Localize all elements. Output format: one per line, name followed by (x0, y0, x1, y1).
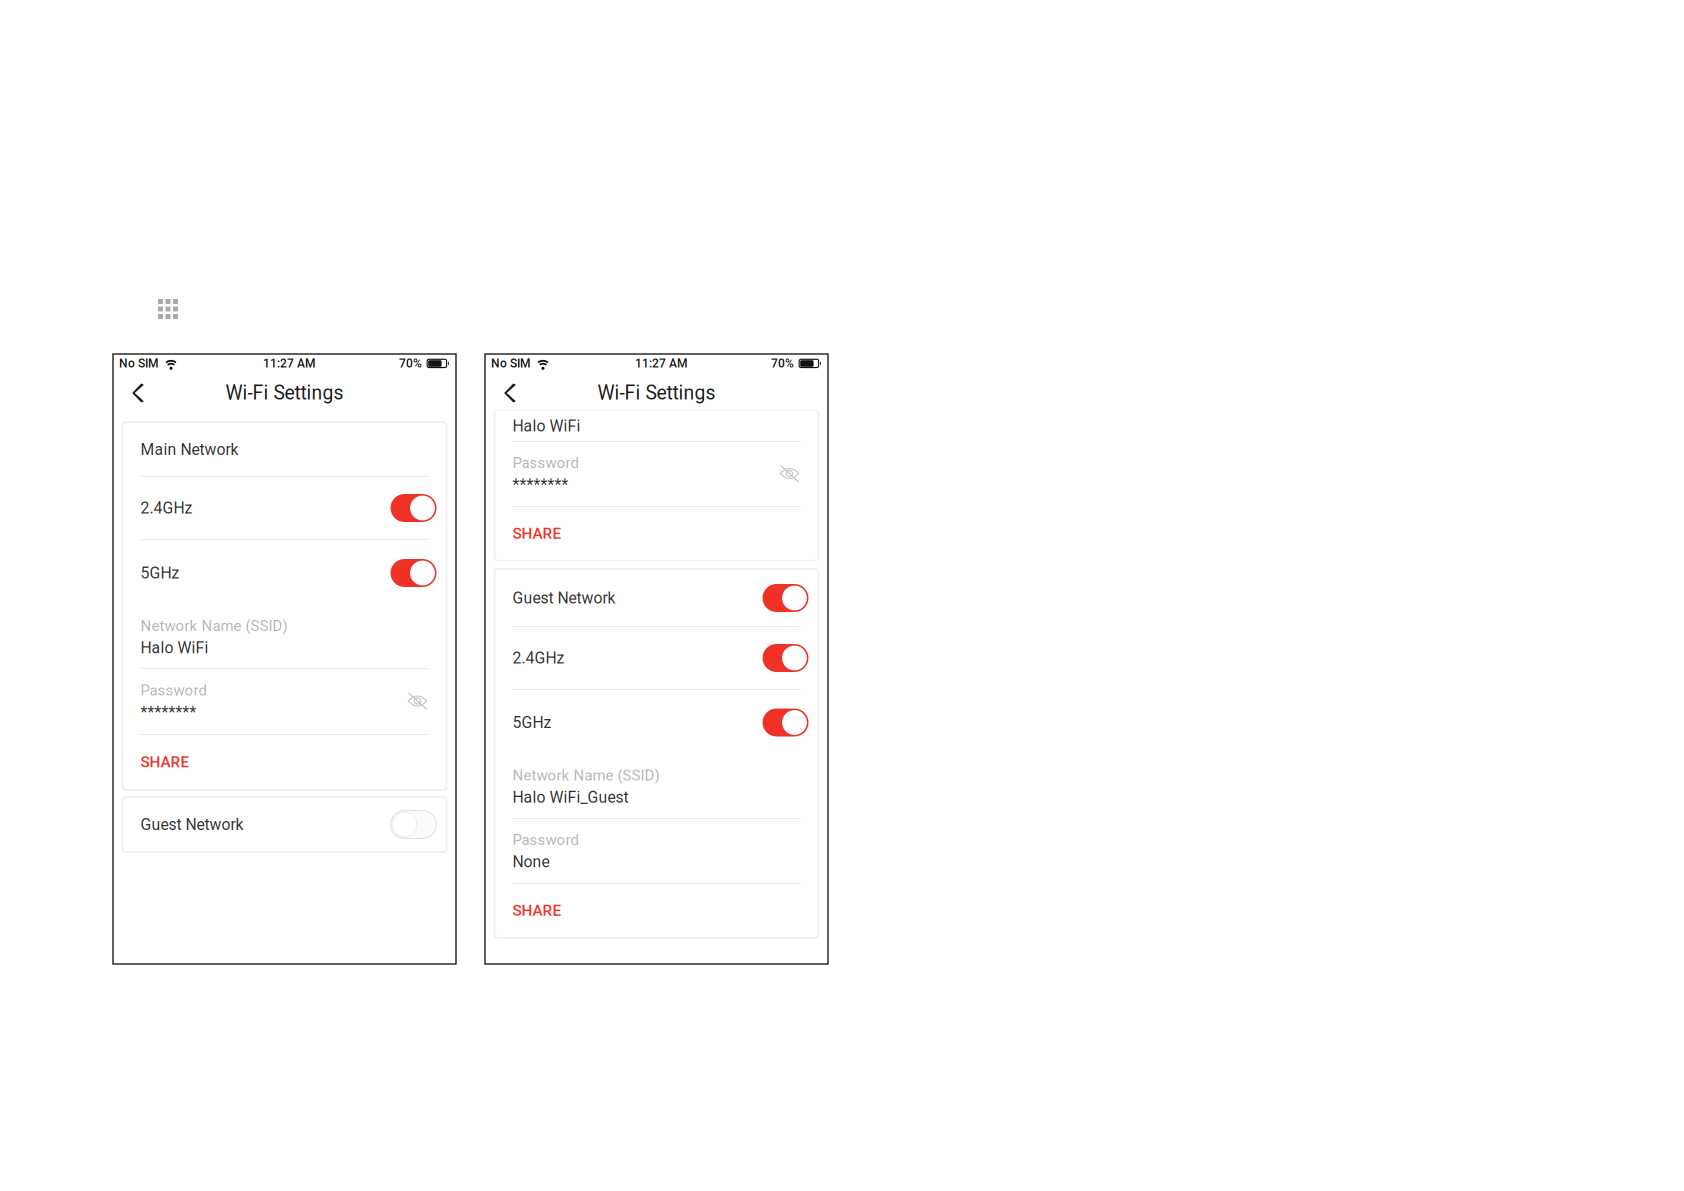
button[interactable]: Back (485, 377, 527, 408)
staticText: Halo WiFi (140, 638, 208, 657)
button[interactable]: Password (510, 453, 576, 493)
button[interactable]: SHARE (123, 735, 445, 789)
staticText: Password (512, 454, 578, 471)
staticText: Halo WiFi_Guest (510, 788, 626, 806)
staticText: Halo WiFi (138, 638, 206, 657)
button[interactable]: Guest Network (493, 570, 819, 626)
staticText: Wi-Fi Settings (225, 382, 343, 404)
staticText: SHARE (138, 753, 187, 771)
staticText: ******** (512, 475, 568, 494)
staticText: No SIM (491, 356, 530, 371)
staticText: None (512, 852, 549, 871)
staticText: No SIM (119, 356, 158, 371)
staticText: 5GHz (512, 713, 551, 732)
staticText: 2.4GHz (140, 499, 192, 517)
button[interactable]: Show password (770, 461, 800, 487)
staticText: Guest Network (138, 815, 241, 834)
button[interactable]: 2.4GHz (121, 477, 447, 539)
button[interactable]: SHARE (495, 884, 817, 937)
button[interactable]: SHARE (121, 735, 447, 789)
button[interactable]: Main Network (123, 423, 445, 476)
staticText: Password (138, 681, 204, 699)
staticText: 70% (399, 356, 422, 371)
button[interactable]: SHARE (493, 884, 819, 937)
button[interactable]: Show password (400, 688, 430, 714)
staticText: 2.4GHz (512, 649, 564, 667)
staticText: SHARE (510, 523, 559, 541)
staticText: 2.4GHz (138, 499, 190, 517)
staticText: SHARE (510, 901, 559, 919)
staticText: Network Name (SSID) (140, 617, 287, 634)
button[interactable]: Guest Network (495, 570, 817, 626)
staticText: 5GHz (140, 564, 179, 582)
staticText: None (510, 852, 547, 871)
staticText: Halo WiFi (512, 417, 580, 435)
staticText: ******** (140, 703, 196, 721)
staticText: SHARE (512, 524, 561, 542)
staticText: Password (140, 681, 206, 699)
staticText: Wi-Fi Settings (597, 382, 715, 404)
button[interactable]: Main Network (121, 423, 447, 476)
staticText: 11:27 AM (635, 356, 687, 371)
staticText: 2.4GHz (510, 649, 562, 667)
staticText: Network Name (SSID) (512, 766, 659, 784)
staticText: ******** (138, 703, 194, 721)
button[interactable]: 5GHz (121, 540, 447, 606)
staticText: SHARE (512, 901, 561, 919)
button[interactable]: SHARE (495, 507, 817, 560)
staticText: Halo WiFi_Guest (512, 788, 628, 806)
staticText: 5GHz (510, 713, 549, 732)
staticText: 70% (771, 356, 794, 371)
button[interactable]: SHARE (493, 506, 819, 559)
staticText: Main Network (140, 440, 238, 459)
button[interactable]: Guest Network (121, 798, 447, 851)
staticText: SHARE (140, 753, 189, 771)
button[interactable]: Halo WiFi (493, 410, 819, 440)
button[interactable]: 2.4GHz (493, 627, 819, 689)
button[interactable]: Network Name (SSID) (512, 766, 659, 806)
staticText: Password (510, 453, 576, 470)
button[interactable]: Network Name (SSID) (510, 766, 657, 806)
staticText: Halo WiFi (510, 416, 578, 434)
staticText: ******** (510, 474, 566, 493)
button[interactable]: Show password (772, 460, 802, 486)
button[interactable]: Show password (398, 688, 428, 714)
staticText: 11:27 AM (263, 356, 315, 371)
button[interactable]: Password (138, 681, 204, 721)
button[interactable]: 5GHz (495, 690, 817, 755)
button[interactable]: 5GHz (123, 540, 445, 606)
staticText: Guest Network (512, 589, 615, 607)
button[interactable]: Halo WiFi (495, 411, 817, 441)
staticText: Password (510, 831, 576, 848)
staticText: 5GHz (138, 564, 177, 582)
button[interactable]: 5GHz (493, 690, 819, 755)
button[interactable]: Password (140, 681, 206, 721)
staticText: Main Network (138, 440, 236, 459)
staticText: Network Name (SSID) (138, 617, 285, 634)
staticText: Guest Network (510, 589, 613, 607)
button[interactable]: Network Name (SSID) (138, 617, 285, 657)
button[interactable]: 2.4GHz (123, 477, 445, 539)
staticText: Password (512, 831, 578, 848)
staticText: Network Name (SSID) (510, 766, 657, 784)
button[interactable]: 2.4GHz (495, 627, 817, 689)
button[interactable]: Password (510, 831, 576, 871)
button[interactable]: Network Name (SSID) (140, 617, 287, 657)
staticText: Guest Network (140, 815, 243, 834)
button[interactable]: Password (512, 454, 578, 494)
button[interactable]: Back (113, 377, 155, 408)
button[interactable]: Guest Network (123, 798, 445, 851)
button[interactable]: Password (512, 831, 578, 871)
